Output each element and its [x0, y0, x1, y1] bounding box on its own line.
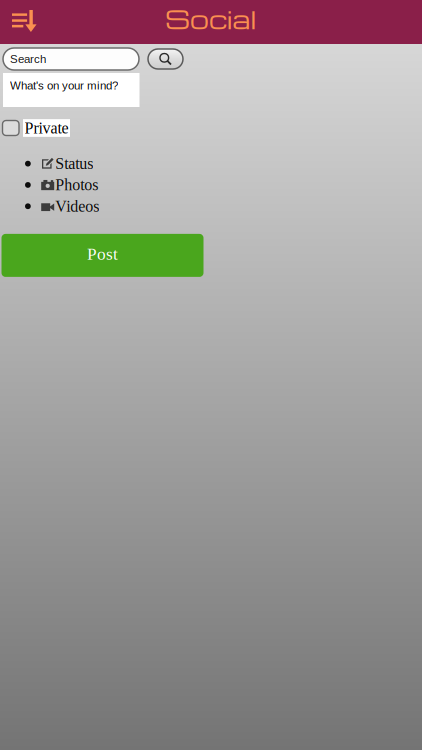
button[interactable]: Private — [2, 118, 70, 138]
button[interactable]: Post — [1, 234, 203, 277]
staticText: Social — [165, 1, 257, 35]
staticText: Status — [55, 155, 93, 172]
staticText: Videos — [55, 197, 99, 215]
button[interactable]: Videos — [25, 196, 422, 217]
button[interactable]: Search — [148, 49, 183, 69]
button[interactable]: Menu — [0, 0, 47, 44]
button[interactable]: Photos — [25, 174, 422, 196]
staticText: What's on your mind? — [10, 79, 118, 92]
staticText: Photos — [55, 176, 98, 194]
button[interactable]: Status — [25, 153, 422, 174]
staticText: Post — [87, 244, 118, 263]
staticText: Private — [24, 119, 68, 137]
staticText: Search — [10, 53, 46, 65]
